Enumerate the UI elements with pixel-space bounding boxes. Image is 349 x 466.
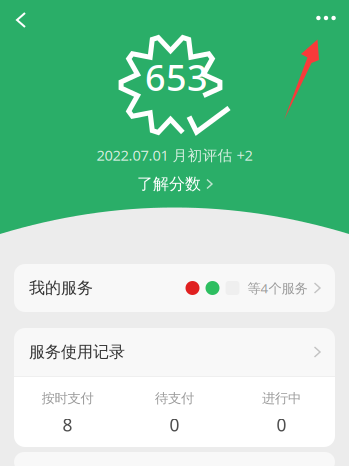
staticText: 待支付 xyxy=(155,390,194,406)
button[interactable]: Back xyxy=(6,6,36,34)
staticText: 进行中 xyxy=(262,390,301,406)
staticText: 等4个服务 xyxy=(247,279,307,297)
staticText: 按时支付 xyxy=(41,390,93,406)
staticText: 服务使用记录 xyxy=(29,342,125,362)
staticText: 653 xyxy=(145,53,208,101)
staticText: 2022.07.01 月初评估 +2 xyxy=(96,145,252,165)
staticText: 0 xyxy=(169,413,179,436)
button[interactable]: 我的服务 xyxy=(14,264,335,312)
staticText: 我的服务 xyxy=(29,278,93,298)
staticText: 了解分数 xyxy=(137,174,201,194)
staticText: 8 xyxy=(62,413,72,436)
button[interactable]: More xyxy=(310,6,342,30)
button[interactable]: 服务使用记录 xyxy=(14,328,335,376)
button[interactable]: 了解分数 xyxy=(0,174,349,194)
staticText: 0 xyxy=(276,413,286,436)
